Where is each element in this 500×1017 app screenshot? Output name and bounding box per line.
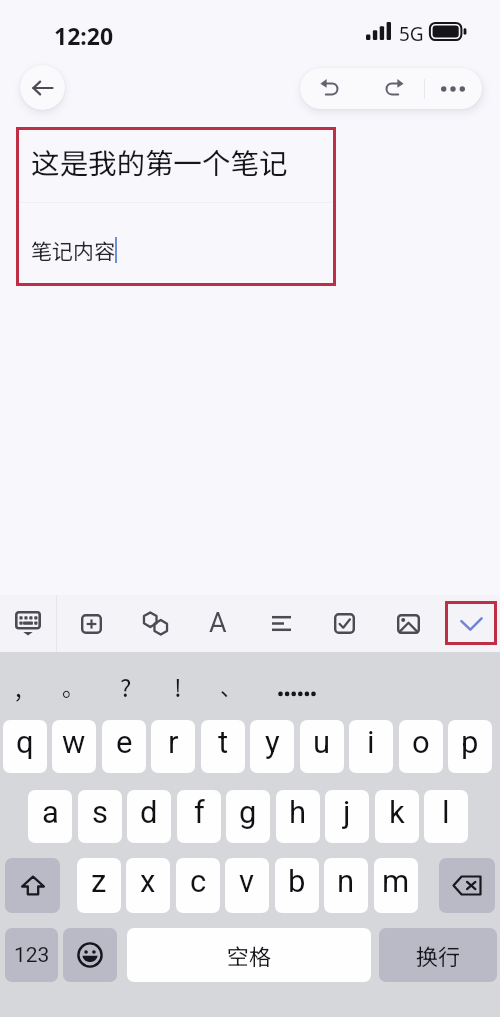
staticText: z <box>91 863 107 899</box>
button[interactable]: m <box>374 858 418 913</box>
button[interactable]: 。 <box>47 668 99 704</box>
button[interactable]: n <box>324 858 368 913</box>
staticText: m <box>382 863 410 899</box>
staticText: i <box>367 724 375 760</box>
button[interactable]: y <box>250 720 294 773</box>
button[interactable]: Hide keyboard <box>0 595 56 652</box>
button[interactable] <box>270 668 322 704</box>
staticText: 笔记内容 <box>31 235 115 265</box>
button[interactable]: ! <box>152 668 204 704</box>
staticText: y <box>265 724 280 760</box>
button[interactable]: v <box>225 858 269 913</box>
staticText: 12:20 <box>54 20 114 51</box>
staticText: u <box>313 724 331 760</box>
staticText: , <box>15 669 22 704</box>
staticText: j <box>343 794 351 830</box>
staticText: w <box>62 724 86 760</box>
staticText: 换行 <box>416 939 461 971</box>
staticText: g <box>239 794 257 830</box>
button[interactable]: b <box>275 858 319 913</box>
button[interactable]: t <box>201 720 245 773</box>
staticText: d <box>140 794 158 830</box>
button[interactable]: d <box>127 790 171 843</box>
staticText: k <box>389 794 405 830</box>
button[interactable]: Numbers <box>5 928 58 982</box>
button[interactable]: p <box>448 720 492 773</box>
staticText: q <box>16 724 34 760</box>
staticText: A <box>209 607 227 639</box>
button[interactable]: a <box>28 790 72 843</box>
button[interactable]: u <box>300 720 344 773</box>
staticText: a <box>42 794 59 830</box>
button[interactable]: q <box>3 720 47 773</box>
staticText: t <box>218 724 229 760</box>
staticText: 空格 <box>227 939 272 971</box>
button[interactable]: Emoji <box>63 928 117 982</box>
button[interactable]: Align <box>253 595 309 652</box>
button[interactable]: Link <box>127 595 183 652</box>
staticText: v <box>239 863 255 899</box>
button[interactable]: 、 <box>205 668 257 704</box>
button[interactable]: l <box>424 790 468 843</box>
button[interactable]: Shift <box>5 858 60 913</box>
button[interactable]: w <box>52 720 96 773</box>
button[interactable]: j <box>325 790 369 843</box>
staticText: e <box>116 724 133 760</box>
button[interactable]: g <box>226 790 270 843</box>
staticText: n <box>337 863 355 899</box>
staticText: b <box>288 863 306 899</box>
staticText: ! <box>174 669 182 704</box>
staticText: s <box>92 794 108 830</box>
staticText: c <box>190 863 207 899</box>
button[interactable]: c <box>176 858 220 913</box>
button[interactable]: x <box>126 858 170 913</box>
button[interactable]: Font <box>190 595 246 652</box>
staticText: f <box>194 794 205 830</box>
staticText: 这是我的第一个笔记 <box>31 141 288 182</box>
button[interactable]: s <box>78 790 122 843</box>
button[interactable]: k <box>375 790 419 843</box>
staticText: x <box>140 863 156 899</box>
staticText: 。 <box>62 670 85 702</box>
button[interactable]: , <box>0 668 44 704</box>
staticText: l <box>442 794 450 830</box>
button[interactable]: r <box>151 720 195 773</box>
staticText: p <box>461 724 479 760</box>
button[interactable]: Backspace <box>439 858 495 913</box>
staticText: 5G <box>399 21 424 47</box>
button[interactable]: Back <box>20 65 65 110</box>
staticText: r <box>168 724 179 760</box>
staticText: h <box>289 794 307 830</box>
button[interactable]: z <box>77 858 121 913</box>
button[interactable]: Done <box>443 595 499 652</box>
button[interactable]: Redo <box>362 68 424 109</box>
button[interactable]: Checklist <box>316 595 372 652</box>
button[interactable]: Image <box>380 595 436 652</box>
button[interactable]: Add <box>63 595 119 652</box>
button[interactable]: i <box>349 720 393 773</box>
button[interactable]: e <box>102 720 146 773</box>
staticText: 123 <box>14 943 50 968</box>
staticText: 、 <box>220 670 243 702</box>
button[interactable]: o <box>399 720 443 773</box>
staticText: o <box>412 724 430 760</box>
button[interactable]: f <box>177 790 221 843</box>
button[interactable]: Enter <box>379 928 497 982</box>
button[interactable]: h <box>276 790 320 843</box>
button[interactable]: ? <box>100 668 152 704</box>
button[interactable]: More options <box>425 68 481 109</box>
button[interactable]: Undo <box>300 68 362 109</box>
staticText: ? <box>120 669 132 704</box>
button[interactable]: 空格 <box>127 928 371 982</box>
